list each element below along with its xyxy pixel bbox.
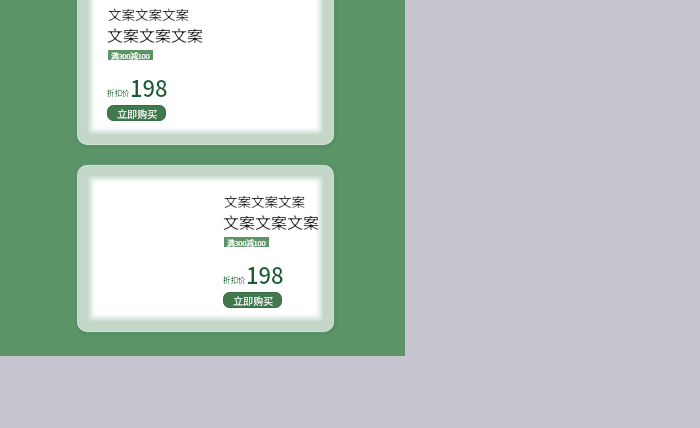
staticText: 198	[246, 258, 284, 290]
staticText: 满300减100	[111, 50, 150, 60]
button[interactable]: 满300减100	[224, 237, 269, 247]
button[interactable]: 满300减100	[108, 50, 153, 60]
staticText: 文案文案文案	[108, 4, 189, 24]
button[interactable]: 立即购买	[107, 105, 166, 121]
button[interactable]: 立即购买	[223, 292, 282, 308]
staticText: 立即购买	[233, 293, 273, 307]
staticText: 折扣价	[107, 87, 130, 99]
button[interactable]: 文案文案文案	[77, 165, 334, 332]
staticText: 文案文案文案	[223, 210, 320, 233]
staticText: 198	[130, 71, 168, 103]
staticText: 文案文案文案	[224, 191, 305, 211]
staticText: 折扣价	[223, 274, 246, 286]
staticText: 满300减100	[227, 237, 266, 247]
staticText: 立即购买	[117, 106, 157, 120]
button[interactable]: 文案文案文案	[77, 0, 334, 145]
staticText: 文案文案文案	[107, 23, 204, 46]
